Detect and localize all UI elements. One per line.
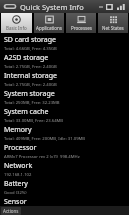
staticText: Quick System Info [20, 2, 84, 12]
button[interactable]: Processes [66, 13, 96, 33]
staticText: Actions [3, 208, 19, 214]
staticText: Network [4, 161, 33, 171]
button[interactable]: System storage [0, 87, 129, 105]
staticText: Total: 409MB, Free: 200MB, Idle: 31.09MB [4, 136, 86, 141]
button[interactable]: Network [0, 159, 129, 177]
staticText: Total: 2.75GB, Free: 2.40GB [4, 82, 57, 87]
staticText: Good (32%) [4, 190, 27, 195]
staticText: Internal storage [4, 71, 57, 81]
button[interactable]: Processor [0, 141, 129, 159]
staticText: SD card storage [4, 35, 56, 45]
staticText: System cache [4, 107, 49, 117]
staticText: Basic Info [6, 25, 27, 31]
staticText: Total: 33.00MB, Free: 23.64MB [4, 118, 64, 123]
button[interactable]: Basic Info [1, 13, 32, 33]
button[interactable]: Internal storage [0, 69, 129, 87]
staticText: Battery [4, 179, 28, 189]
staticText: Processor [4, 143, 37, 153]
button[interactable]: Memory [0, 123, 129, 141]
staticText: Applications [36, 25, 62, 31]
staticText: Processes [71, 25, 92, 31]
button[interactable]: Applications [34, 13, 64, 33]
button[interactable]: Actions [0, 206, 129, 215]
staticText: Net States [102, 25, 124, 31]
button[interactable]: Battery [0, 177, 129, 195]
staticText: Total: 250MB, Free: 32.23MB [4, 100, 60, 105]
button[interactable]: System cache [0, 105, 129, 123]
other: App icon [3, 2, 17, 11]
staticText: ARMv7 Processor rev 2 (v7l) 998.4MHz [4, 154, 80, 159]
staticText: 192.168.1.102 [4, 172, 32, 177]
staticText: Total: 4.66GB, Free: 4.35GB [4, 46, 57, 51]
staticText: Memory [4, 125, 32, 135]
staticText: Total: 2.75GB, Free: 2.40GB [4, 64, 57, 69]
button[interactable]: A2SD storage [0, 51, 129, 69]
button[interactable]: SD card storage [0, 33, 129, 51]
staticText: Sensor [4, 197, 27, 206]
staticText: A2SD storage [4, 53, 49, 63]
staticText: System storage [4, 89, 55, 99]
button[interactable]: Sensor [0, 195, 129, 206]
button[interactable]: Net States [98, 13, 128, 33]
